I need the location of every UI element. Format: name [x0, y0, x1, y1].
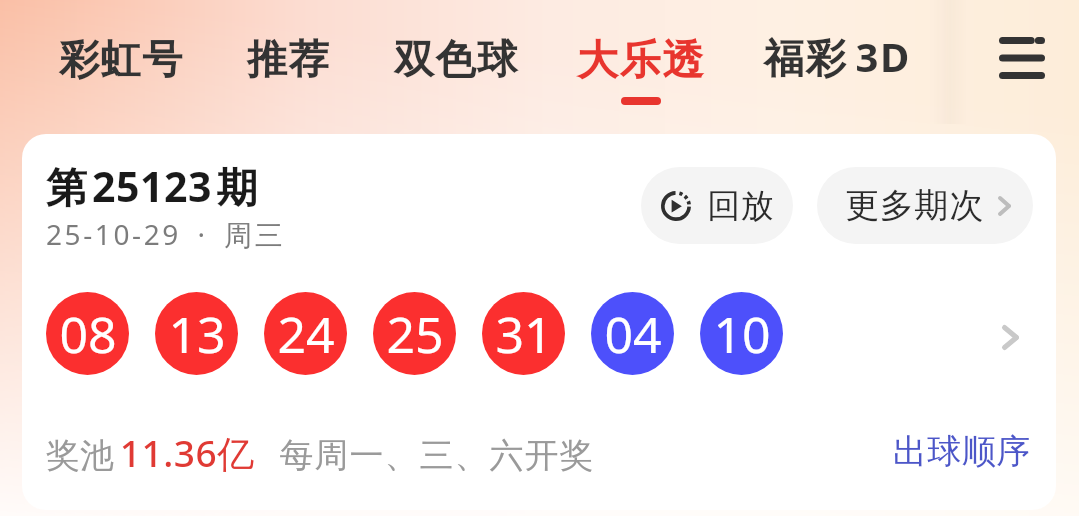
staticText: 彩虹号	[59, 34, 184, 84]
staticText: 奖池 11.36亿 每周一、三、六开奖	[46, 427, 595, 478]
button[interactable]: 福彩 3D	[764, 0, 911, 102]
staticText: 回放	[707, 185, 774, 227]
button[interactable]: Show all numbers	[982, 309, 1038, 365]
staticText: 25	[386, 300, 444, 368]
staticText: 13	[168, 300, 226, 368]
button[interactable]: 回放	[641, 167, 793, 244]
button[interactable]: 双色球	[394, 0, 519, 102]
staticText: 24	[277, 300, 335, 368]
staticText: 福彩 3D	[764, 29, 911, 84]
staticText: 推荐	[247, 34, 331, 84]
staticText: 08	[59, 300, 117, 368]
button[interactable]: Menu	[987, 23, 1057, 93]
staticText: 大乐透	[577, 35, 705, 87]
staticText: 10	[713, 300, 771, 368]
button[interactable]: 出球顺序	[893, 430, 1031, 473]
staticText: 双色球	[394, 34, 519, 84]
button[interactable]: 推荐	[247, 0, 331, 102]
staticText: 25-10-29 · 周三	[46, 215, 286, 253]
staticText: 31	[495, 300, 553, 368]
staticText: 04	[604, 300, 662, 368]
staticText: 更多期次	[845, 184, 985, 227]
button[interactable]: 大乐透	[577, 0, 705, 105]
button[interactable]: 更多期次	[817, 167, 1033, 244]
button[interactable]: 彩虹号	[59, 0, 184, 102]
staticText: 出球顺序	[893, 430, 1031, 473]
staticText: 第 25123 期	[46, 158, 258, 214]
